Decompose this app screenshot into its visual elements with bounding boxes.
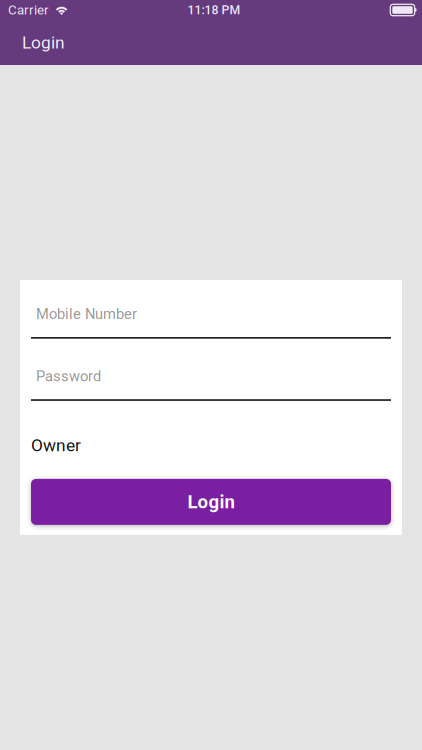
staticText: Password	[36, 368, 101, 385]
staticText: Login	[187, 491, 234, 513]
button[interactable]: Password	[31, 353, 391, 401]
staticText: Mobile Number	[36, 305, 137, 323]
staticText: Carrier	[8, 2, 49, 18]
staticText: 11:18 PM	[187, 3, 240, 17]
staticText: Owner	[31, 435, 81, 455]
button[interactable]: Login	[31, 479, 391, 525]
button[interactable]: Mobile Number	[31, 291, 391, 339]
staticText: Login	[22, 32, 65, 53]
